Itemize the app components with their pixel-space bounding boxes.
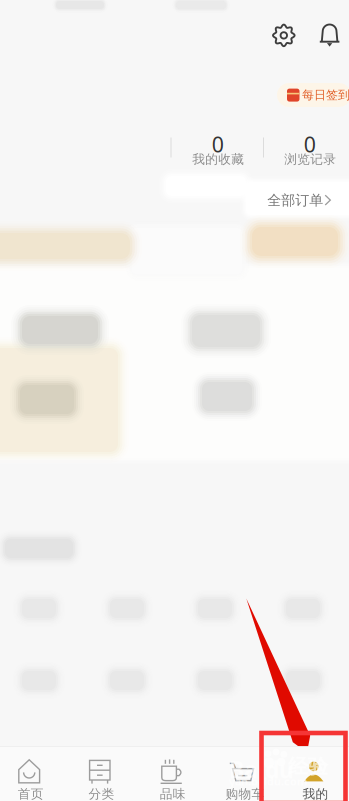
button[interactable]: Settings [0, 0, 349, 801]
staticText: 0 [304, 130, 316, 159]
staticText: 品味 [160, 786, 186, 801]
staticText: 我的 [302, 786, 328, 801]
button[interactable]: Notifications [0, 0, 349, 801]
button[interactable]: 每日签到 [0, 0, 74, 24]
staticText: 0 [212, 130, 224, 159]
staticText: 首页 [18, 786, 44, 801]
button[interactable]: 品味 [0, 0, 349, 801]
staticText: 经验 [288, 754, 328, 779]
staticText: 浏览记录 [284, 151, 336, 167]
staticText: 全部订单 [267, 191, 323, 209]
button[interactable]: 购物车 [0, 0, 349, 801]
staticText: 我的收藏 [192, 151, 244, 167]
staticText: yan.baidu.com [229, 774, 307, 788]
button[interactable]: 首页 [0, 0, 349, 801]
staticText: 分类 [88, 786, 114, 801]
staticText: 每日签到 [302, 87, 349, 102]
staticText: 购物车 [226, 786, 265, 801]
staticText: Baidu [229, 754, 294, 785]
button[interactable]: 我的 [0, 0, 349, 801]
button[interactable]: 全部订单 [0, 0, 349, 801]
button[interactable]: 分类 [0, 0, 349, 801]
